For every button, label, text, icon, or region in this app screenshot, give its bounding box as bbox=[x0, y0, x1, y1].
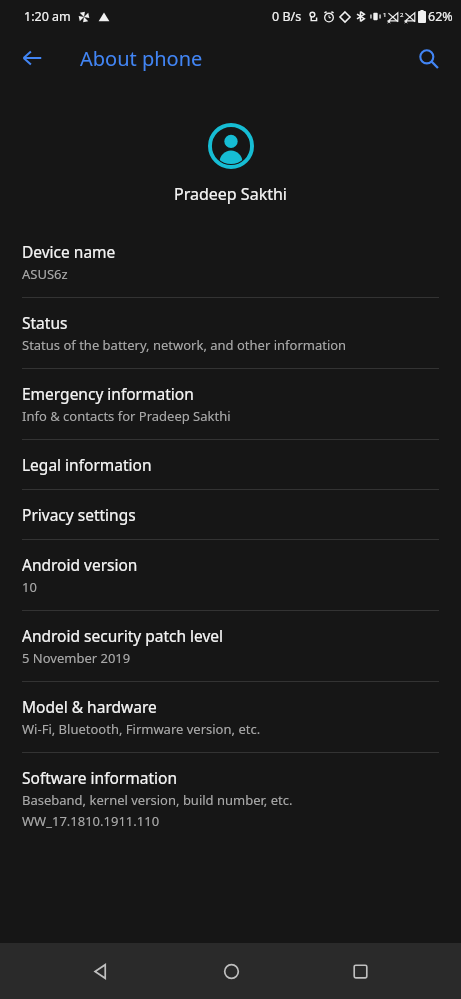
staticText: Pradeep Sakthi bbox=[174, 183, 287, 205]
staticText: Software information bbox=[22, 767, 177, 788]
button[interactable]: Emergency information bbox=[0, 369, 461, 439]
button[interactable]: Back bbox=[73, 943, 129, 999]
staticText: 1:20 am bbox=[24, 8, 71, 25]
staticText: Android security patch level bbox=[22, 625, 224, 646]
staticText: Device name bbox=[22, 241, 116, 262]
staticText: Status bbox=[22, 312, 68, 333]
button[interactable]: Software information bbox=[0, 753, 461, 844]
staticText: Baseband, kernel version, build number, … bbox=[22, 791, 293, 809]
button[interactable]: Model & hardware bbox=[0, 682, 461, 752]
staticText: Privacy settings bbox=[22, 504, 136, 525]
staticText: Status of the battery, network, and othe… bbox=[22, 336, 347, 354]
button[interactable]: Device name bbox=[0, 227, 461, 297]
staticText: Wi-Fi, Bluetooth, Firmware version, etc. bbox=[22, 720, 261, 738]
button[interactable]: Search bbox=[407, 37, 449, 79]
button[interactable]: Privacy settings bbox=[0, 490, 461, 539]
button[interactable]: Status bbox=[0, 298, 461, 368]
staticText: Android version bbox=[22, 554, 138, 575]
staticText: 0 B/s bbox=[272, 8, 302, 25]
button[interactable]: Android security patch level bbox=[0, 611, 461, 681]
button[interactable]: Android version bbox=[0, 540, 461, 610]
staticText: 2 bbox=[400, 11, 404, 19]
staticText: Info & contacts for Pradeep Sakthi bbox=[22, 407, 231, 425]
button[interactable]: Back bbox=[10, 36, 54, 80]
button[interactable]: Recent apps bbox=[332, 943, 388, 999]
staticText: 10 bbox=[22, 578, 37, 596]
staticText: 5 November 2019 bbox=[22, 649, 131, 667]
staticText: Emergency information bbox=[22, 383, 194, 404]
staticText: ASUS6z bbox=[22, 265, 68, 283]
staticText: 62% bbox=[428, 8, 453, 25]
staticText: WW_17.1810.1911.110 bbox=[22, 812, 160, 830]
button[interactable]: Legal information bbox=[0, 440, 461, 489]
button[interactable]: Home bbox=[203, 943, 259, 999]
staticText: Legal information bbox=[22, 454, 152, 475]
staticText: Model & hardware bbox=[22, 696, 157, 717]
staticText: 1 bbox=[383, 11, 387, 19]
staticText: About phone bbox=[80, 45, 203, 72]
